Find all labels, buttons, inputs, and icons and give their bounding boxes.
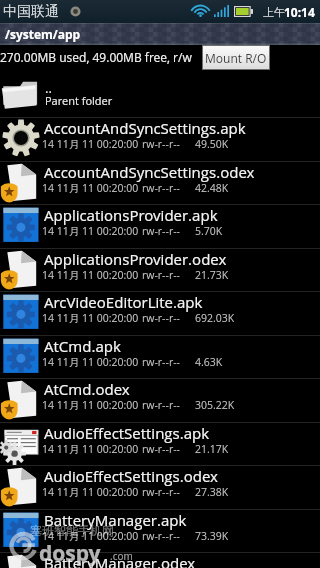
staticText: 14 11月 11 00:20:00 <box>42 355 139 369</box>
staticText: 21.73K <box>195 268 229 282</box>
staticText: AccountAndSyncSettings.apk <box>44 118 246 138</box>
button[interactable]: ApplicationsProvider.odex <box>0 249 320 293</box>
button[interactable]: AccountAndSyncSettings.odex <box>0 162 320 206</box>
staticText: 73.39K <box>195 529 229 543</box>
staticText: 42.48K <box>195 181 229 195</box>
staticText: Parent folder <box>45 93 113 108</box>
staticText: 14 11月 11 00:20:00 <box>42 181 139 195</box>
staticText: 14 11月 11 00:20:00 <box>42 268 139 282</box>
staticText: 14 11月 11 00:20:00 <box>42 442 139 456</box>
staticText: 塞班智能手机网 <box>30 523 114 538</box>
staticText: 14 11月 11 00:20:00 <box>42 224 139 238</box>
staticText: AtCmd.apk <box>44 336 121 356</box>
staticText: 中国联通 <box>3 3 59 21</box>
staticText: AccountAndSyncSettings.odex <box>44 162 255 182</box>
staticText: 49.50K <box>195 137 229 151</box>
staticText: rw-r--r-- <box>142 137 180 151</box>
staticText: AudioEffectSettings.odex <box>44 466 218 486</box>
staticText: rw-r--r-- <box>142 398 180 412</box>
button[interactable]: AtCmd.odex <box>0 379 320 423</box>
staticText: ApplicationsProvider.apk <box>44 205 218 225</box>
staticText: 14 11月 11 00:20:00 <box>42 398 139 412</box>
staticText: rw-r--r-- <box>142 268 180 282</box>
staticText: dospy <box>39 539 101 568</box>
staticText: 14 11月 11 00:20:00 <box>42 485 139 499</box>
button[interactable]: BatteryManager.apk <box>0 510 320 554</box>
staticText: AtCmd.odex <box>44 379 130 399</box>
staticText: rw-r--r-- <box>142 311 180 325</box>
staticText: Mount R/O <box>205 50 267 66</box>
staticText: 14 11月 11 00:20:00 <box>42 529 139 543</box>
button[interactable]: .. <box>0 75 320 118</box>
staticText: 270.00MB used, 49.00MB free, r/w <box>0 49 192 65</box>
staticText: rw-r--r-- <box>142 485 180 499</box>
staticText: 305.22K <box>195 398 235 412</box>
button[interactable]: /system/app <box>0 23 320 45</box>
staticText: 27.38K <box>195 485 229 499</box>
staticText: rw-r--r-- <box>142 529 180 543</box>
staticText: 692.03K <box>195 311 235 325</box>
staticText: 14 11月 11 00:20:00 <box>42 137 139 151</box>
staticText: 21.17K <box>195 442 229 456</box>
button[interactable]: AudioEffectSettings.apk <box>0 423 320 467</box>
button[interactable]: ApplicationsProvider.apk <box>0 205 320 249</box>
staticText: 5.70K <box>195 224 223 238</box>
button[interactable]: BatteryManager.odex <box>0 553 320 568</box>
staticText: .. <box>45 79 52 97</box>
button[interactable]: AtCmd.apk <box>0 336 320 380</box>
staticText: ApplicationsProvider.odex <box>44 249 227 269</box>
staticText: 10:14 <box>284 4 315 20</box>
staticText: rw-r--r-- <box>142 442 180 456</box>
staticText: AudioEffectSettings.apk <box>44 423 210 443</box>
button[interactable]: AccountAndSyncSettings.apk <box>0 118 320 162</box>
staticText: .com <box>110 549 133 563</box>
staticText: 14 11月 11 00:20:00 <box>42 311 139 325</box>
staticText: rw-r--r-- <box>142 355 180 369</box>
staticText: BatteryManager.apk <box>44 510 187 530</box>
staticText: BatteryManager.odex <box>44 553 196 568</box>
button[interactable]: ArcVideoEditorLite.apk <box>0 292 320 336</box>
staticText: rw-r--r-- <box>142 224 180 238</box>
staticText: /system/app <box>5 26 81 42</box>
staticText: ArcVideoEditorLite.apk <box>44 292 203 312</box>
staticText: 4.63K <box>195 355 223 369</box>
button[interactable]: Mount R/O <box>203 46 269 69</box>
staticText: 上午 <box>263 5 285 19</box>
button[interactable]: AudioEffectSettings.odex <box>0 466 320 510</box>
staticText: rw-r--r-- <box>142 181 180 195</box>
